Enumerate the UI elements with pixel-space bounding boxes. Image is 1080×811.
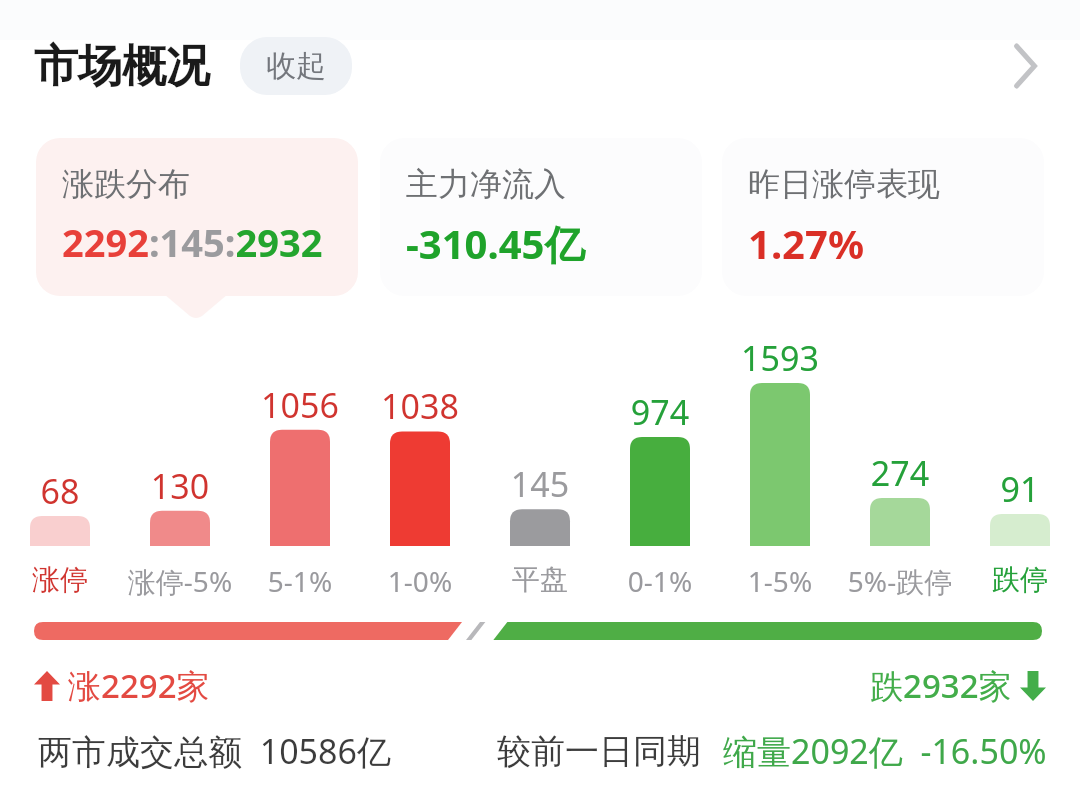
staticText: 涨跌分布 [62, 164, 190, 204]
staticText: 涨停-5% [120, 562, 240, 600]
staticText: 145 [480, 461, 600, 507]
staticText: 5%-跌停 [840, 562, 960, 600]
staticText: 市场概况 [34, 39, 210, 94]
button[interactable]: 昨日涨停表现 [722, 138, 1044, 296]
staticText: 974 [600, 389, 720, 435]
button[interactable]: 收起 [240, 37, 352, 95]
staticText: 昨日涨停表现 [748, 164, 940, 204]
button[interactable]: 974 [600, 324, 720, 614]
staticText: 缩量2092亿 -16.50% [723, 728, 1047, 774]
button[interactable]: 68 [0, 324, 120, 614]
staticText: 5-1% [240, 562, 360, 600]
staticText: 2292:145:2932 [62, 216, 323, 268]
button[interactable]: 145 [480, 324, 600, 614]
staticText: 0-1% [600, 562, 720, 600]
staticText: 1.27% [748, 216, 864, 270]
button[interactable]: 1038 [360, 324, 480, 614]
staticText: -310.45亿 [406, 216, 585, 271]
staticText: 涨停 [0, 562, 120, 597]
staticText: 274 [840, 450, 960, 496]
button[interactable]: 主力净流入 [380, 138, 702, 296]
staticText: 130 [120, 463, 240, 509]
staticText: 91 [960, 466, 1080, 512]
staticText: 收起 [266, 47, 326, 85]
button[interactable]: 130 [120, 324, 240, 614]
button[interactable]: 1593 [720, 324, 840, 614]
staticText: 涨2292家 [68, 663, 210, 708]
staticText: 1038 [360, 383, 480, 429]
staticText: 平盘 [480, 562, 600, 597]
staticText: 跌停 [960, 562, 1080, 597]
staticText: 两市成交总额 10586亿 [38, 728, 391, 774]
staticText: 主力净流入 [406, 164, 566, 204]
staticText: 1-0% [360, 562, 480, 600]
button[interactable]: 涨跌分布 [36, 138, 358, 296]
staticText: 1-5% [720, 562, 840, 600]
button[interactable]: 1056 [240, 324, 360, 614]
staticText: 68 [0, 468, 120, 514]
staticText: 1593 [720, 335, 840, 381]
button[interactable]: 展开详情 [1000, 38, 1056, 94]
button[interactable]: 274 [840, 324, 960, 614]
staticText: 1056 [240, 382, 360, 428]
staticText: 较前一日同期 [497, 730, 701, 773]
button[interactable]: 91 [960, 324, 1080, 614]
staticText: 跌2932家 [870, 663, 1012, 708]
